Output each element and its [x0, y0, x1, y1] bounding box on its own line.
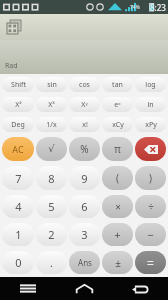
staticText: sin — [47, 80, 57, 90]
staticText: Deg — [11, 120, 25, 130]
staticText: xPy — [145, 120, 157, 130]
staticText: + — [114, 227, 121, 242]
button[interactable]: ) — [135, 166, 166, 190]
staticText: 1/x — [46, 120, 57, 130]
button[interactable]: Shift — [2, 77, 34, 92]
staticText: ( — [116, 171, 119, 185]
button[interactable]: = — [135, 251, 166, 274]
button[interactable]: Home — [56, 277, 112, 300]
button[interactable]: 0 — [2, 251, 34, 274]
staticText: 3 — [81, 227, 88, 242]
staticText: 8 — [48, 171, 55, 186]
button[interactable]: xCy — [102, 117, 133, 132]
button[interactable]: Backspace — [135, 137, 166, 161]
staticText: 8:23 — [150, 2, 166, 13]
staticText: 7 — [15, 171, 22, 186]
button[interactable]: 5 — [36, 195, 67, 218]
staticText: Rad — [5, 61, 18, 71]
button[interactable]: 2 — [36, 223, 67, 246]
staticText: 0 — [15, 255, 22, 270]
button[interactable]: 8 — [36, 166, 67, 190]
staticText: ) — [149, 171, 152, 185]
staticText: X² — [15, 100, 22, 110]
button[interactable]: Menu — [0, 277, 56, 300]
staticText: 5 — [48, 199, 55, 214]
staticText: 6 — [81, 199, 88, 214]
button[interactable]: log — [135, 77, 166, 92]
staticText: 9 — [81, 171, 88, 186]
button[interactable]: eˣ — [102, 97, 133, 112]
button[interactable]: Panels — [4, 17, 24, 37]
button[interactable]: π — [102, 137, 133, 161]
button[interactable]: xPy — [135, 117, 166, 132]
button[interactable]: % — [69, 137, 100, 161]
staticText: X³ — [48, 100, 55, 110]
staticText: Ans — [78, 257, 92, 268]
button[interactable]: X³ — [36, 97, 67, 112]
staticText: Shift — [11, 80, 26, 90]
button[interactable]: − — [135, 223, 166, 246]
button[interactable]: 1/x — [36, 117, 67, 132]
staticText: 2 — [48, 227, 55, 242]
staticText: ± — [115, 256, 121, 270]
button[interactable]: Deg — [2, 117, 34, 132]
button[interactable]: Ans — [69, 251, 100, 274]
button[interactable]: . — [36, 251, 67, 274]
button[interactable]: Xʸ — [69, 97, 100, 112]
button[interactable]: × — [102, 195, 133, 218]
staticText: 4 — [15, 199, 22, 214]
staticText: − — [147, 227, 154, 242]
button[interactable]: cos — [69, 77, 100, 92]
button[interactable]: 6 — [69, 195, 100, 218]
button[interactable]: √ — [36, 137, 67, 161]
button[interactable]: ± — [102, 251, 133, 274]
button[interactable]: X² — [2, 97, 34, 112]
staticText: ÷ — [148, 200, 154, 214]
button[interactable]: tan — [102, 77, 133, 92]
staticText: π — [114, 142, 121, 156]
button[interactable]: + — [102, 223, 133, 246]
button[interactable]: 4 — [2, 195, 34, 218]
button[interactable]: x! — [69, 117, 100, 132]
staticText: 1 — [15, 227, 22, 242]
staticText: × — [115, 200, 121, 214]
button[interactable]: ÷ — [135, 195, 166, 218]
button[interactable]: Back — [112, 277, 168, 300]
staticText: = — [147, 255, 154, 271]
staticText: log — [145, 80, 156, 90]
button[interactable]: 1 — [2, 223, 34, 246]
staticText: Xʸ — [81, 100, 88, 110]
staticText: 74% — [130, 4, 140, 11]
button[interactable]: 3 — [69, 223, 100, 246]
button[interactable]: 9 — [69, 166, 100, 190]
staticText: x! — [82, 120, 88, 130]
staticText: tan — [112, 80, 123, 90]
staticText: AC — [12, 143, 24, 155]
staticText: . — [50, 255, 53, 270]
button[interactable]: AC — [2, 137, 34, 161]
staticText: cos — [79, 80, 90, 90]
staticText: % — [80, 142, 89, 156]
button[interactable]: ln — [135, 97, 166, 112]
button[interactable]: 7 — [2, 166, 34, 190]
staticText: eˣ — [114, 100, 121, 110]
staticText: √ — [48, 143, 55, 155]
staticText: xCy — [112, 120, 124, 130]
button[interactable]: sin — [36, 77, 67, 92]
staticText: ln — [147, 100, 154, 110]
button[interactable]: ( — [102, 166, 133, 190]
